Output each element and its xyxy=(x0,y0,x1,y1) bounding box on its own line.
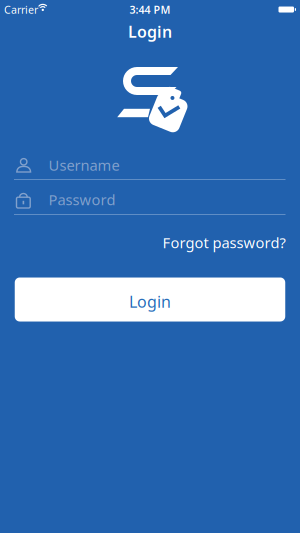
secureTextField[interactable]: Password xyxy=(14,184,285,215)
textField[interactable]: Username xyxy=(14,149,285,180)
staticText: Carrier xyxy=(4,2,38,17)
button[interactable]: Forgot password? xyxy=(162,233,285,252)
button[interactable]: Login xyxy=(15,277,285,321)
staticText: Login xyxy=(128,21,172,42)
staticText: Password xyxy=(48,190,115,209)
staticText: Forgot password? xyxy=(162,233,285,252)
staticText: Username xyxy=(48,155,119,175)
staticText: 3:44 PM xyxy=(129,2,170,17)
staticText: Login xyxy=(129,291,171,312)
